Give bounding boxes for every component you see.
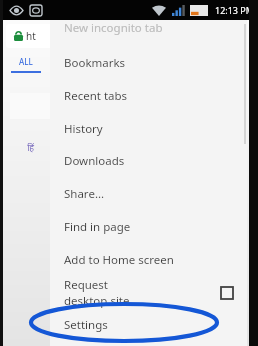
button[interactable]: Bookmarks bbox=[50, 47, 247, 79]
staticText: Settings bbox=[64, 317, 108, 333]
button[interactable]: Add to Home screen bbox=[50, 244, 247, 276]
button[interactable]: ht bbox=[6, 24, 58, 48]
staticText: Share… bbox=[64, 186, 104, 202]
button[interactable]: Request desktop site bbox=[50, 277, 247, 309]
staticText: Add to Home screen bbox=[64, 252, 174, 268]
staticText: Downloads bbox=[64, 153, 125, 169]
staticText: ALL bbox=[19, 56, 33, 67]
staticText: New incognito tab bbox=[64, 20, 163, 36]
staticText: ht bbox=[26, 29, 36, 43]
button[interactable]: Find in page bbox=[50, 211, 247, 243]
button[interactable]: Downloads bbox=[50, 145, 247, 177]
staticText: Request desktop site bbox=[64, 277, 142, 309]
staticText: History bbox=[64, 121, 103, 137]
staticText: Recent tabs bbox=[64, 88, 128, 104]
button[interactable]: ALL bbox=[8, 56, 44, 73]
staticText: Find in page bbox=[64, 219, 131, 235]
button[interactable]: History bbox=[50, 113, 247, 145]
staticText: 12:13 PM bbox=[215, 4, 254, 16]
button[interactable]: Recent tabs bbox=[50, 80, 247, 112]
button[interactable]: Share… bbox=[50, 178, 247, 210]
staticText: Bookmarks bbox=[64, 55, 126, 71]
staticText: हिं bbox=[27, 141, 35, 153]
button[interactable]: Settings bbox=[50, 309, 247, 341]
